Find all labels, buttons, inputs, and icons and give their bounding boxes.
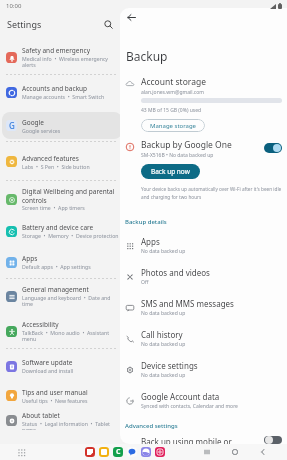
staticText: Call history <box>141 329 183 340</box>
staticText: Digital Wellbeing and parental controls <box>22 187 115 204</box>
staticText: Safety and emergency <box>22 46 90 55</box>
staticText: Apps <box>22 254 38 263</box>
staticText: Tips and user manual <box>22 388 88 397</box>
button[interactable]: Digital Wellbeing and parental controls <box>2 184 122 214</box>
button[interactable]: Apps <box>120 230 287 261</box>
staticText: Back up now <box>151 167 190 176</box>
staticText: Back up using mobile or <box>141 436 232 444</box>
staticText: Labs • S Pen • Side button <box>22 163 90 170</box>
button[interactable]: G <box>2 112 122 139</box>
staticText: Backup details <box>125 218 167 226</box>
button[interactable]: Calculator <box>113 447 123 457</box>
staticText: Advanced features <box>22 154 79 163</box>
staticText: No data backed up <box>141 248 186 255</box>
staticText: Useful tips • New features <box>22 397 88 404</box>
button[interactable]: Accessibility <box>2 316 122 346</box>
button[interactable]: Google Account data <box>120 385 287 416</box>
staticText: Backup <box>126 48 168 64</box>
button[interactable]: Accounts and backup <box>2 78 122 106</box>
staticText: Software update <box>22 358 73 367</box>
button[interactable]: Internet <box>141 447 151 457</box>
button[interactable]: General management <box>2 282 122 310</box>
staticText: Apps <box>141 236 160 247</box>
staticText: General management <box>22 285 89 294</box>
button[interactable]: Tips and user manual <box>2 386 122 405</box>
staticText: Device settings <box>141 360 198 371</box>
button[interactable]: Back <box>123 9 139 25</box>
button[interactable]: Back up using mobile or <box>120 436 287 444</box>
button[interactable]: Back <box>256 445 270 459</box>
staticText: Manage accounts • Smart Switch <box>22 93 105 100</box>
button[interactable]: Software update <box>2 352 122 380</box>
staticText: About tablet <box>22 411 60 420</box>
staticText: Battery and device care <box>22 223 94 232</box>
button[interactable]: Photos and videos <box>120 261 287 292</box>
staticText: Settings <box>7 18 42 30</box>
staticText: Accounts and backup <box>22 84 88 93</box>
button[interactable]: Manage storage <box>141 119 205 132</box>
staticText: Advanced settings <box>125 422 178 430</box>
button[interactable]: Call history <box>120 323 287 354</box>
staticText: Default apps • App settings <box>22 263 91 270</box>
staticText: Google <box>22 118 44 127</box>
button[interactable]: Instagram <box>155 447 165 457</box>
button[interactable]: Safety and emergency <box>2 42 122 72</box>
staticText: No data backed up <box>141 310 186 317</box>
staticText: alan.jones.wm@gmail.com <box>141 89 204 96</box>
staticText: 10:00 <box>6 2 22 10</box>
button[interactable]: Apps <box>2 248 122 276</box>
staticText: Account storage <box>141 76 206 88</box>
staticText: Google Account data <box>141 391 220 402</box>
button[interactable]: Backup by Google One <box>264 143 282 153</box>
staticText: Manage storage <box>150 122 196 130</box>
staticText: Off <box>141 279 149 286</box>
button[interactable]: Files <box>99 447 109 457</box>
staticText: Download and install <box>22 367 74 374</box>
staticText: No data backed up <box>141 341 186 348</box>
staticText: TalkBack • Mono audio • Assistant menu <box>22 329 110 343</box>
button[interactable]: Recent apps <box>200 445 214 459</box>
staticText: SMS and MMS messages <box>141 298 234 309</box>
staticText: Storage • Memory • Device protection <box>22 232 119 239</box>
button[interactable]: About tablet <box>2 411 122 430</box>
staticText: Your device backs up automatically over … <box>141 186 282 200</box>
button[interactable]: Notes <box>85 447 95 457</box>
staticText: Synced with contacts, Calendar and more <box>141 403 238 410</box>
button[interactable]: Search <box>101 17 115 31</box>
button[interactable]: Messages <box>127 447 137 457</box>
staticText: Screen time • App timers <box>22 204 85 211</box>
button[interactable]: Home <box>228 445 242 459</box>
button[interactable]: Device settings <box>120 354 287 385</box>
staticText: 43 MB of 15 GB (0%) used <box>141 107 202 114</box>
button[interactable]: Apps list <box>14 445 28 459</box>
staticText: Photos and videos <box>141 267 210 278</box>
button[interactable]: Advanced features <box>2 145 122 178</box>
button[interactable]: SMS and MMS messages <box>120 292 287 323</box>
staticText: Medical info • Wireless emergency alerts <box>22 55 109 69</box>
staticText: Status • Legal information • Tablet name <box>22 420 110 430</box>
button[interactable]: Battery and device care <box>2 220 122 242</box>
staticText: C <box>116 447 121 457</box>
staticText: Google services <box>22 127 61 134</box>
staticText: Accessibility <box>22 320 59 329</box>
staticText: No data backed up <box>141 372 186 379</box>
staticText: G <box>9 120 15 131</box>
staticText: SM-X516B • No data backed up <box>141 152 214 159</box>
staticText: Backup by Google One <box>141 139 232 151</box>
staticText: Language and keyboard • Date and time <box>22 294 111 308</box>
button[interactable]: Back up now <box>141 164 200 179</box>
